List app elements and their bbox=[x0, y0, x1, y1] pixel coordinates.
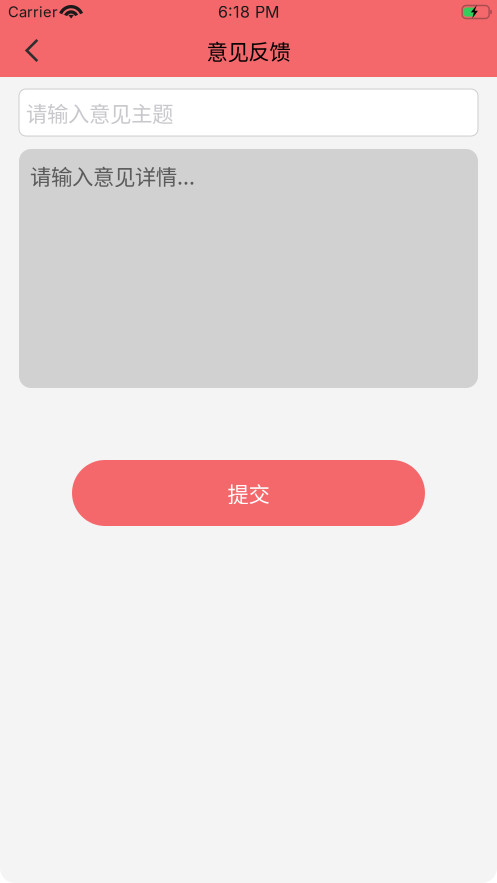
staticText: 意见反馈 bbox=[206, 35, 290, 66]
staticText: Carrier bbox=[8, 3, 58, 21]
button[interactable]: Back bbox=[10, 28, 54, 72]
staticText: 提交 bbox=[227, 478, 269, 508]
button[interactable]: 提交 bbox=[72, 460, 425, 526]
staticText: 请输入意见详情... bbox=[30, 160, 195, 191]
button[interactable]: 请输入意见详情... bbox=[19, 149, 478, 388]
staticText: 6:18 PM bbox=[218, 2, 279, 22]
staticText: 请输入意见主题 bbox=[26, 97, 173, 128]
button[interactable]: 请输入意见主题 bbox=[19, 89, 478, 136]
